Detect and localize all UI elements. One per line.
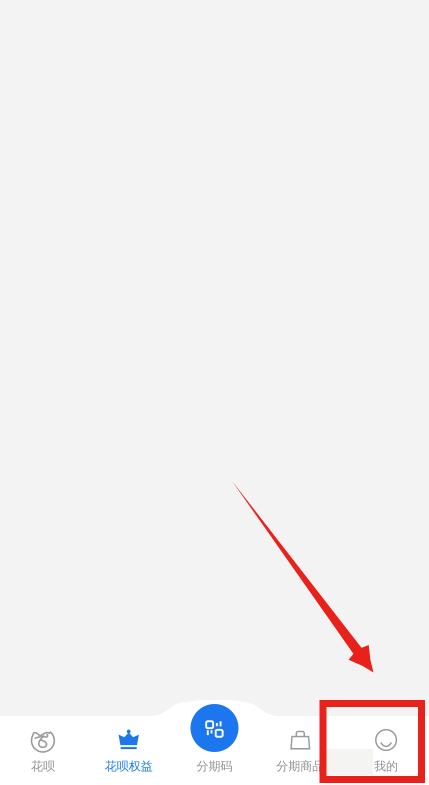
button[interactable]: 花呗权益 xyxy=(86,716,172,785)
staticText: 分期码 xyxy=(196,759,232,774)
button[interactable]: 花呗 xyxy=(0,716,86,785)
staticText: 分期商品 xyxy=(276,759,324,774)
staticText: 花呗权益 xyxy=(105,759,153,774)
button[interactable]: 分期码 xyxy=(172,716,257,785)
staticText: 花呗 xyxy=(31,759,55,774)
staticText: 我的 xyxy=(374,759,398,774)
button[interactable]: 我的 xyxy=(343,716,429,785)
button[interactable]: 分期商品 xyxy=(257,716,343,785)
